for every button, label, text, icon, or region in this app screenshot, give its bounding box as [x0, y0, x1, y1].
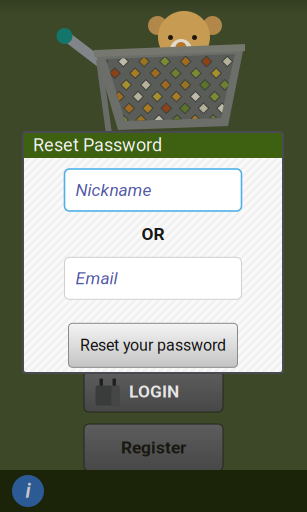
- staticText: Reset your password: [80, 336, 226, 355]
- button[interactable]: Info: [0, 470, 56, 512]
- staticText: OR: [141, 224, 164, 244]
- staticText: Email: [75, 268, 117, 288]
- button[interactable]: Register: [84, 424, 223, 471]
- button[interactable]: Reset your password: [68, 323, 237, 367]
- staticText: Reset Password: [33, 134, 162, 156]
- staticText: LOGIN: [129, 381, 179, 402]
- staticText: i: [25, 479, 30, 503]
- staticText: Nickname: [75, 180, 151, 200]
- button[interactable]: LOGIN: [84, 371, 223, 412]
- staticText: Register: [121, 437, 186, 458]
